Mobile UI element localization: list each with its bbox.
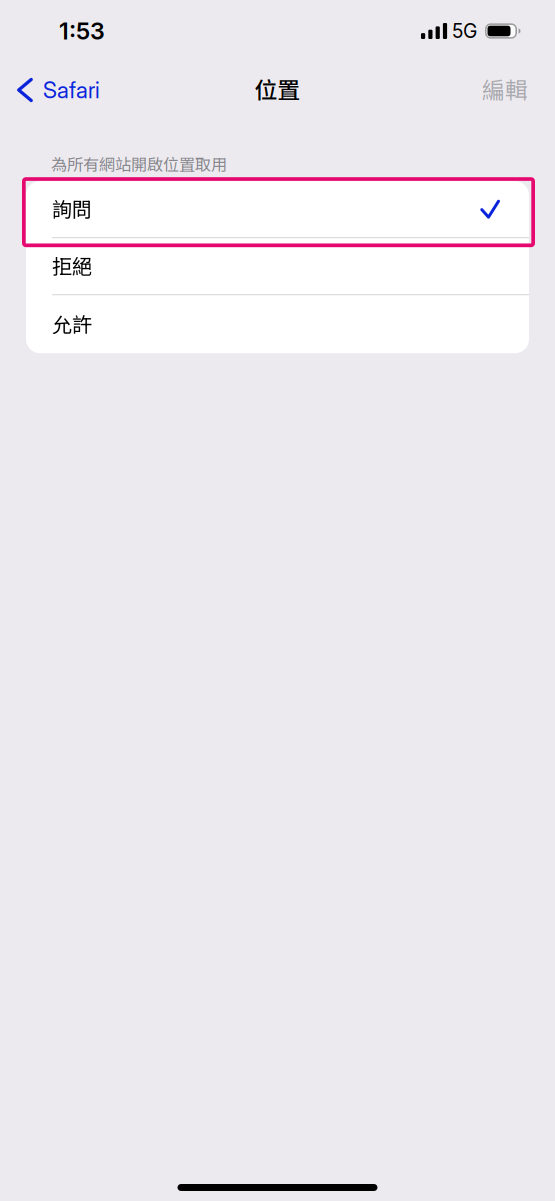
staticText: 允許 [52, 312, 92, 336]
button[interactable]: Safari [0, 65, 110, 115]
staticText: 為所有網站開啟位置取用 [51, 155, 227, 174]
staticText: 5G [452, 19, 477, 43]
button[interactable]: 詢問 [26, 181, 529, 237]
staticText: 詢問 [52, 197, 92, 221]
staticText: 拒絕 [52, 254, 92, 278]
button[interactable]: 允許 [26, 295, 529, 353]
button[interactable]: 拒絕 [26, 238, 529, 294]
staticText: 位置 [254, 77, 300, 103]
button[interactable]: 編輯 [468, 65, 555, 115]
staticText: Safari [43, 76, 100, 104]
staticText: 編輯 [482, 77, 528, 103]
staticText: 1:53 [59, 17, 105, 45]
